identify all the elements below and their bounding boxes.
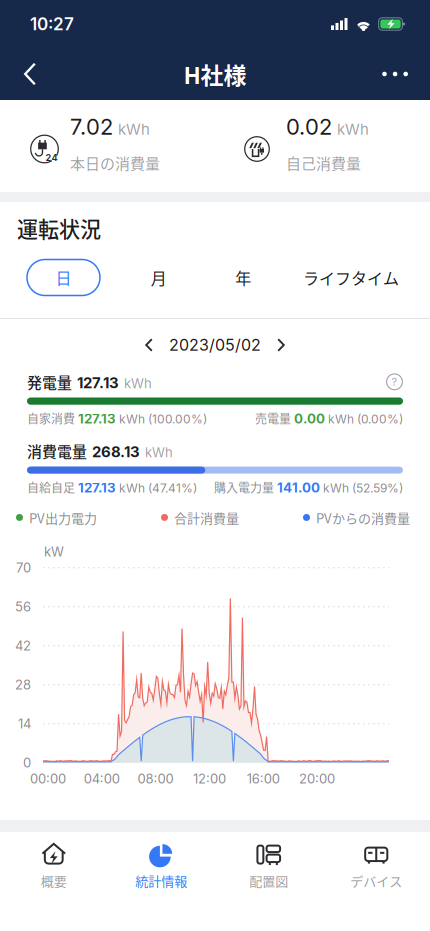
staticText: 統計情報 (135, 871, 187, 890)
staticText: kWh (0.00%) (328, 412, 403, 426)
staticText: 概要 (41, 871, 67, 890)
staticText: kWh (145, 445, 173, 460)
staticText: 12:00 (193, 771, 226, 787)
staticText: kWh (337, 120, 369, 138)
button[interactable]: 年 (217, 259, 269, 295)
staticText: 0.02 (286, 113, 332, 140)
staticText: 04:00 (84, 771, 120, 787)
staticText: kWh (118, 120, 150, 138)
staticText: 16:00 (247, 771, 280, 787)
staticText: デバイス (350, 871, 402, 890)
staticText: kWh (47.41%) (119, 481, 197, 495)
staticText: 14 (18, 716, 31, 732)
staticText: ? (391, 375, 397, 388)
staticText: ライフタイム (303, 266, 399, 289)
staticText: 年 (235, 266, 251, 289)
button[interactable]: 概要 (0, 832, 107, 895)
staticText: 42 (15, 638, 31, 654)
button[interactable]: Help (386, 373, 403, 390)
staticText: 配置図 (249, 871, 288, 890)
button[interactable]: More options (360, 50, 430, 98)
staticText: 28 (15, 677, 31, 693)
staticText: 08:00 (138, 771, 174, 787)
staticText: 発電量 (27, 371, 72, 393)
staticText: 56 (15, 599, 31, 615)
staticText: 自給自足 (27, 479, 75, 496)
staticText: 本日の消費量 (70, 152, 160, 174)
staticText: 購入電力量 (214, 479, 274, 496)
staticText: 24 (45, 152, 57, 163)
staticText: 127.13 (77, 374, 119, 392)
button[interactable]: 配置図 (215, 832, 322, 895)
button[interactable]: Back (0, 48, 58, 99)
staticText: 自家消費 (27, 410, 75, 427)
staticText: 2023/05/02 (169, 335, 261, 355)
button[interactable]: ライフタイム (303, 259, 399, 295)
staticText: 0 (23, 755, 31, 771)
staticText: 自己消費量 (286, 152, 361, 174)
staticText: 売電量 (255, 410, 291, 427)
button[interactable]: 月 (134, 259, 184, 295)
button[interactable]: Next day (261, 326, 301, 364)
staticText: 20:00 (299, 771, 335, 787)
button[interactable]: 統計情報 (107, 832, 215, 895)
button[interactable]: 日 (27, 259, 100, 295)
staticText: 127.13 (78, 480, 116, 496)
staticText: 141.00 (277, 480, 320, 496)
button[interactable]: デバイス (322, 832, 430, 895)
staticText: 合計消費量 (174, 508, 239, 527)
staticText: PV出力電力 (29, 508, 97, 527)
staticText: 268.13 (92, 443, 140, 461)
staticText: H社様 (183, 57, 246, 91)
button[interactable]: Previous day (129, 326, 169, 364)
staticText: 運転状況 (17, 213, 101, 243)
staticText: 10:27 (30, 14, 74, 34)
staticText: kW (44, 544, 64, 560)
staticText: 月 (151, 266, 167, 289)
staticText: 日 (55, 266, 71, 289)
staticText: 127.13 (78, 411, 116, 427)
staticText: PVからの消費量 (316, 508, 410, 527)
staticText: kWh (124, 376, 152, 391)
staticText: 00:00 (30, 771, 66, 787)
staticText: 消費電量 (27, 440, 87, 462)
staticText: 0.00 (294, 411, 325, 427)
staticText: 7.02 (70, 113, 113, 140)
staticText: kWh (52.59%) (323, 481, 403, 495)
staticText: 70 (16, 560, 31, 576)
staticText: kWh (100.00%) (119, 412, 207, 426)
